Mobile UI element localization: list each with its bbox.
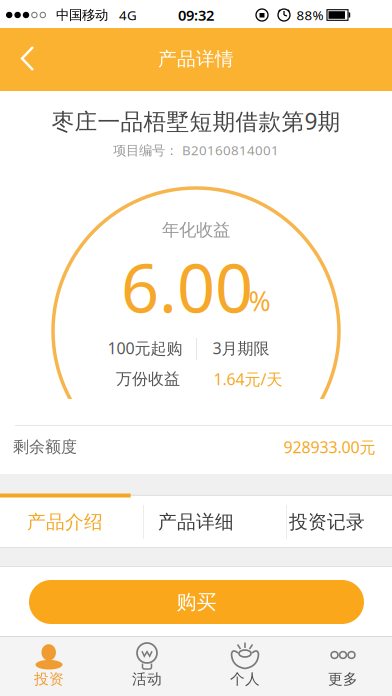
button[interactable]: 产品介绍 xyxy=(1,497,129,547)
staticText: 投资 xyxy=(34,670,64,688)
staticText: 中国移动 xyxy=(56,7,108,23)
staticText: 100元起购 xyxy=(107,337,182,359)
staticText: 剩余额度 xyxy=(13,437,77,457)
staticText: 4G xyxy=(119,6,137,24)
staticText: 产品详情 xyxy=(158,47,234,70)
button[interactable]: 返回 xyxy=(5,36,49,80)
button[interactable]: 活动 xyxy=(98,636,196,696)
staticText: % xyxy=(248,283,270,319)
staticText: 更多 xyxy=(328,670,358,688)
staticText: 万份收益 xyxy=(116,369,180,389)
staticText: 6.00 xyxy=(121,243,253,331)
button[interactable]: 个人 xyxy=(196,636,294,696)
staticText: 产品详细 xyxy=(158,510,234,533)
staticText: 购买 xyxy=(176,590,216,614)
staticText: 年化收益 xyxy=(162,219,230,241)
staticText: 活动 xyxy=(132,670,162,688)
staticText: 3月期限 xyxy=(212,337,269,359)
staticText: 个人 xyxy=(230,670,260,688)
button[interactable]: 投资记录 xyxy=(263,497,391,547)
staticText: 928933.00元 xyxy=(283,436,375,458)
staticText: 1.64元/天 xyxy=(213,368,282,390)
button[interactable]: 更多 xyxy=(294,636,392,696)
staticText: 88% xyxy=(296,6,323,24)
button[interactable]: 产品详细 xyxy=(132,497,260,547)
button[interactable]: 购买 xyxy=(29,580,364,624)
staticText: 项目编号： B20160814001 xyxy=(113,141,279,159)
staticText: 产品介绍 xyxy=(27,510,103,533)
staticText: 投资记录 xyxy=(289,510,365,533)
button[interactable]: 投资 xyxy=(0,636,98,696)
staticText: 枣庄一品梧墅短期借款第9期 xyxy=(51,106,340,136)
staticText: 09:32 xyxy=(178,5,214,25)
